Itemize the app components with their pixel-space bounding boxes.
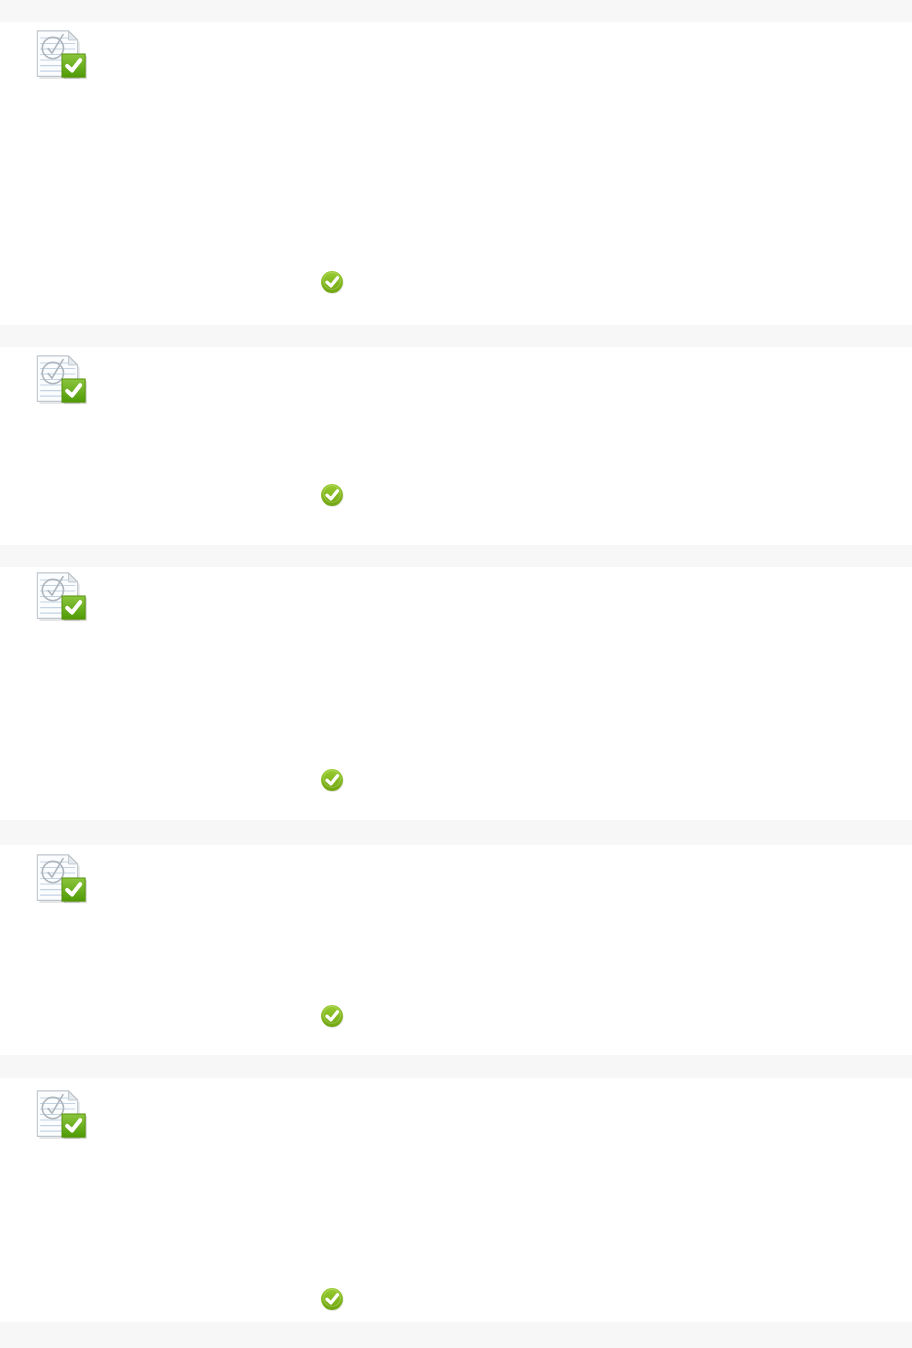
other: Verified (320, 483, 344, 507)
other: Completed document (36, 1088, 88, 1140)
button[interactable]: Completed document (0, 347, 912, 545)
button[interactable]: Completed document (0, 22, 912, 325)
other: Verified (320, 1004, 344, 1028)
other: Completed document (36, 353, 88, 405)
button[interactable]: Completed document (0, 567, 912, 820)
other: Completed document (36, 570, 88, 622)
other: Verified (320, 270, 344, 294)
other: Completed document (36, 852, 88, 904)
other: Verified (320, 768, 344, 792)
button[interactable]: Completed document (0, 845, 912, 1055)
button[interactable]: Completed document (0, 1078, 912, 1322)
other: Verified (320, 1287, 344, 1311)
other: Completed document (36, 28, 88, 80)
